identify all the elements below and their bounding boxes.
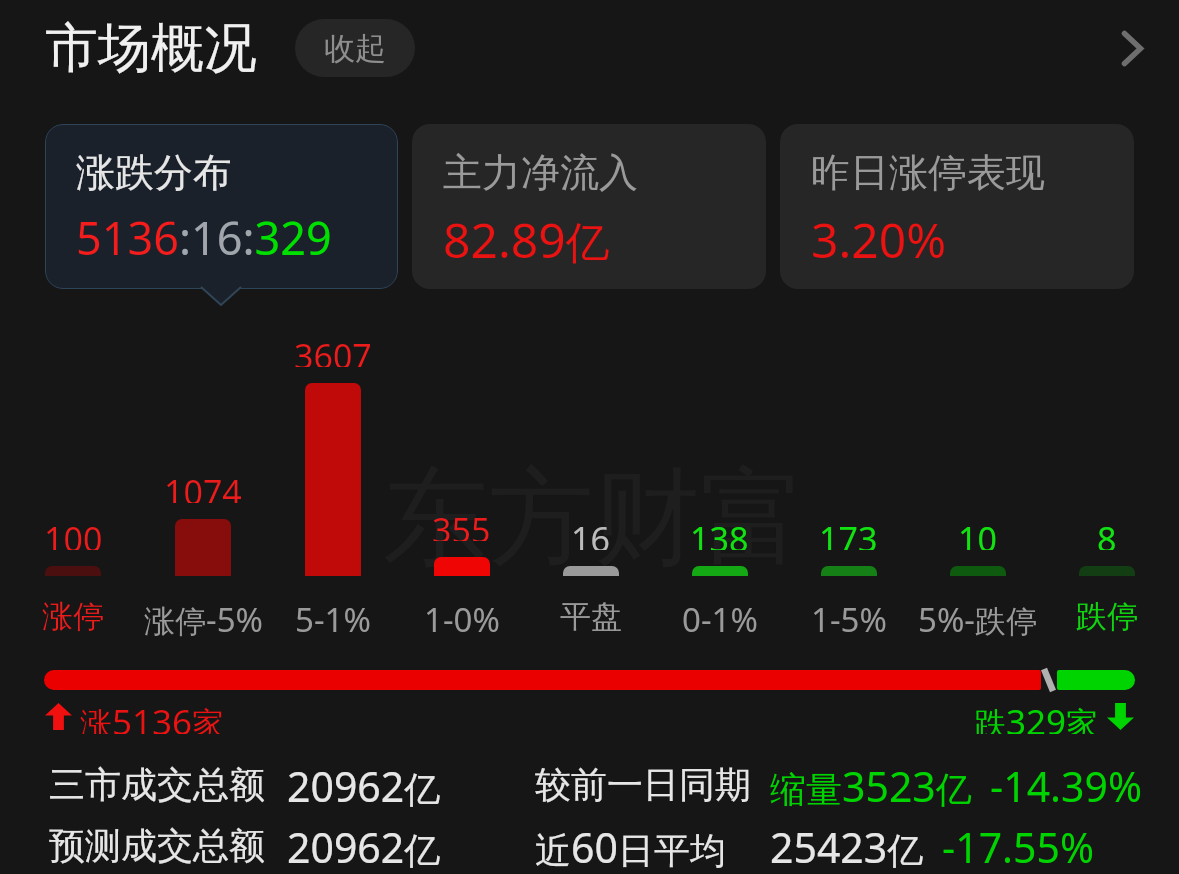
button[interactable]: 8: [1042, 330, 1171, 640]
staticText: 收起: [324, 29, 386, 68]
staticText: 100: [44, 516, 103, 550]
staticText: 82.89亿: [443, 207, 610, 272]
staticText: 20962亿: [287, 819, 441, 871]
button[interactable]: 10: [913, 330, 1042, 640]
staticText: 预测成交总额: [49, 823, 265, 868]
button[interactable]: 昨日涨停表现: [780, 124, 1134, 289]
button[interactable]: 3607: [268, 330, 397, 640]
staticText: 10: [958, 516, 997, 550]
staticText: 涨停-5%: [144, 597, 263, 640]
button[interactable]: 100: [8, 330, 138, 640]
button[interactable]: 主力净流入: [412, 124, 766, 289]
staticText: -14.39%: [990, 758, 1143, 810]
button[interactable]: 173: [784, 330, 913, 640]
staticText: 涨跌分布: [76, 148, 232, 197]
staticText: 昨日涨停表现: [811, 148, 1045, 197]
staticText: 三市成交总额: [49, 762, 265, 807]
button[interactable]: 138: [655, 330, 784, 640]
staticText: 主力净流入: [443, 148, 638, 197]
staticText: 1074: [164, 469, 242, 503]
staticText: 近60日平均: [535, 819, 726, 871]
staticText: 涨停: [42, 597, 104, 636]
staticText: 东方财富: [382, 452, 806, 586]
button[interactable]: 16: [526, 330, 655, 640]
button[interactable]: 1074: [138, 330, 268, 640]
staticText: 1-5%: [811, 597, 887, 640]
button[interactable]: 355: [397, 330, 526, 640]
staticText: 3.20%: [811, 207, 947, 272]
staticText: 5%-跌停: [918, 597, 1037, 640]
staticText: 跌329家: [974, 698, 1099, 734]
staticText: 8: [1097, 516, 1117, 550]
staticText: 3607: [294, 333, 372, 367]
staticText: 1-0%: [424, 597, 500, 640]
staticText: 25423亿: [770, 819, 924, 871]
staticText: 平盘: [560, 597, 622, 636]
staticText: 0-1%: [682, 597, 758, 640]
staticText: 355: [432, 507, 491, 541]
staticText: 173: [819, 516, 878, 550]
staticText: 较前一日同期: [535, 762, 751, 807]
staticText: 市场概况: [45, 15, 257, 82]
staticText: 5-1%: [295, 597, 371, 640]
staticText: 5136:16:329: [76, 207, 332, 268]
staticText: 16: [571, 516, 610, 550]
button[interactable]: 收起: [295, 19, 415, 77]
staticText: 20962亿: [287, 758, 441, 810]
button[interactable]: 涨跌家数比例: [44, 670, 1135, 690]
staticText: 缩量3523亿: [770, 758, 972, 810]
button[interactable]: 涨跌分布: [45, 124, 398, 289]
staticText: 138: [690, 516, 749, 550]
staticText: 涨5136家: [80, 698, 225, 734]
staticText: 跌停: [1076, 597, 1138, 636]
button[interactable]: 展开市场概况: [1094, 3, 1170, 93]
staticText: -17.55%: [942, 819, 1095, 871]
